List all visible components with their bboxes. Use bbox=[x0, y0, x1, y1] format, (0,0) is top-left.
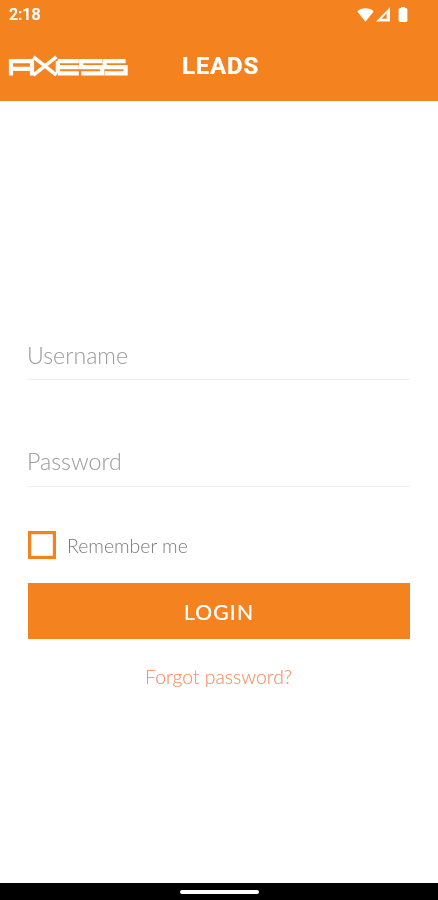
staticText: LEADS bbox=[182, 52, 259, 80]
other: Battery bbox=[398, 7, 408, 22]
button[interactable]: Forgot password? bbox=[137, 661, 301, 692]
staticText: Remember me bbox=[67, 534, 188, 557]
other: Wi-Fi signal bbox=[357, 7, 374, 22]
button[interactable]: Password bbox=[28, 443, 410, 487]
other: Cellular signal bbox=[376, 7, 390, 22]
staticText: Username bbox=[27, 341, 129, 369]
staticText: LOGIN bbox=[184, 599, 255, 624]
staticText: 2:18 bbox=[9, 5, 41, 24]
staticText: Password bbox=[27, 447, 122, 475]
button[interactable]: Remember me bbox=[28, 531, 188, 559]
button[interactable]: Username bbox=[28, 337, 410, 380]
button[interactable]: LOGIN bbox=[28, 583, 410, 639]
